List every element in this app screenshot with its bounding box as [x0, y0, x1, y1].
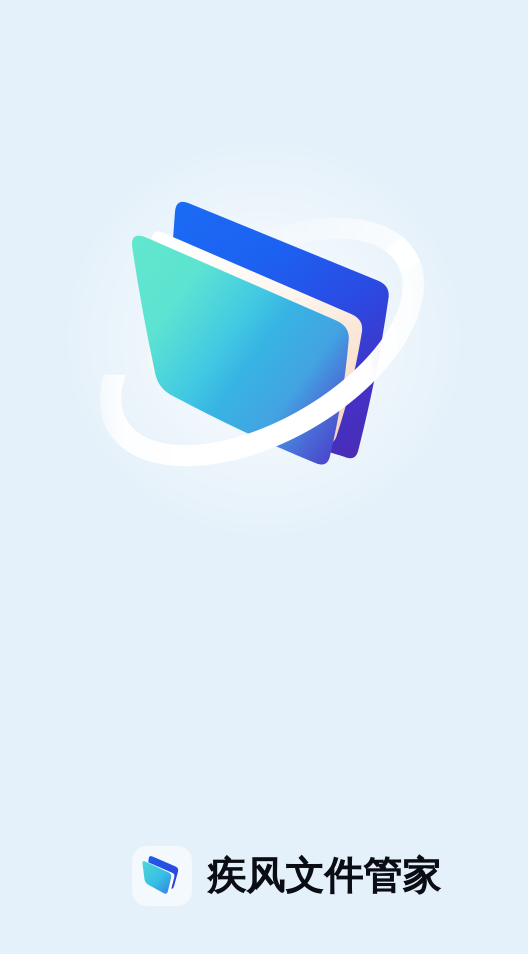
staticText: 疾风文件管家	[207, 852, 441, 900]
